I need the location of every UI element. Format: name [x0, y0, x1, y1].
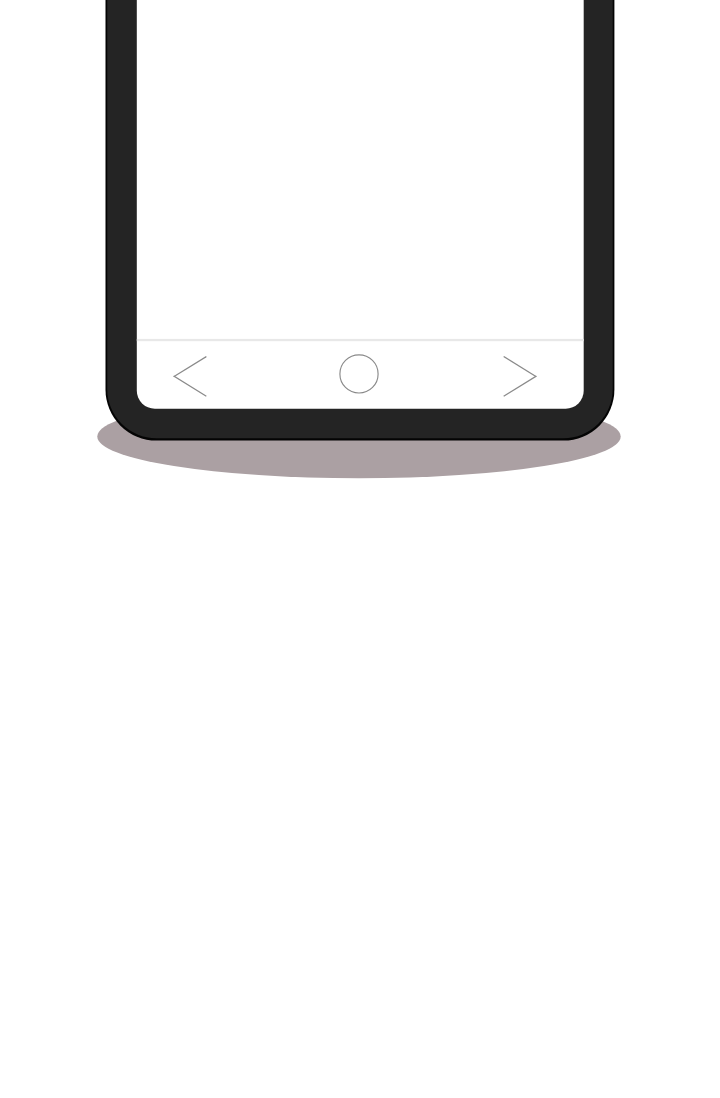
- button[interactable]: Back: [159, 345, 221, 405]
- button[interactable]: Recent apps: [489, 345, 551, 405]
- button[interactable]: Home: [328, 345, 390, 405]
